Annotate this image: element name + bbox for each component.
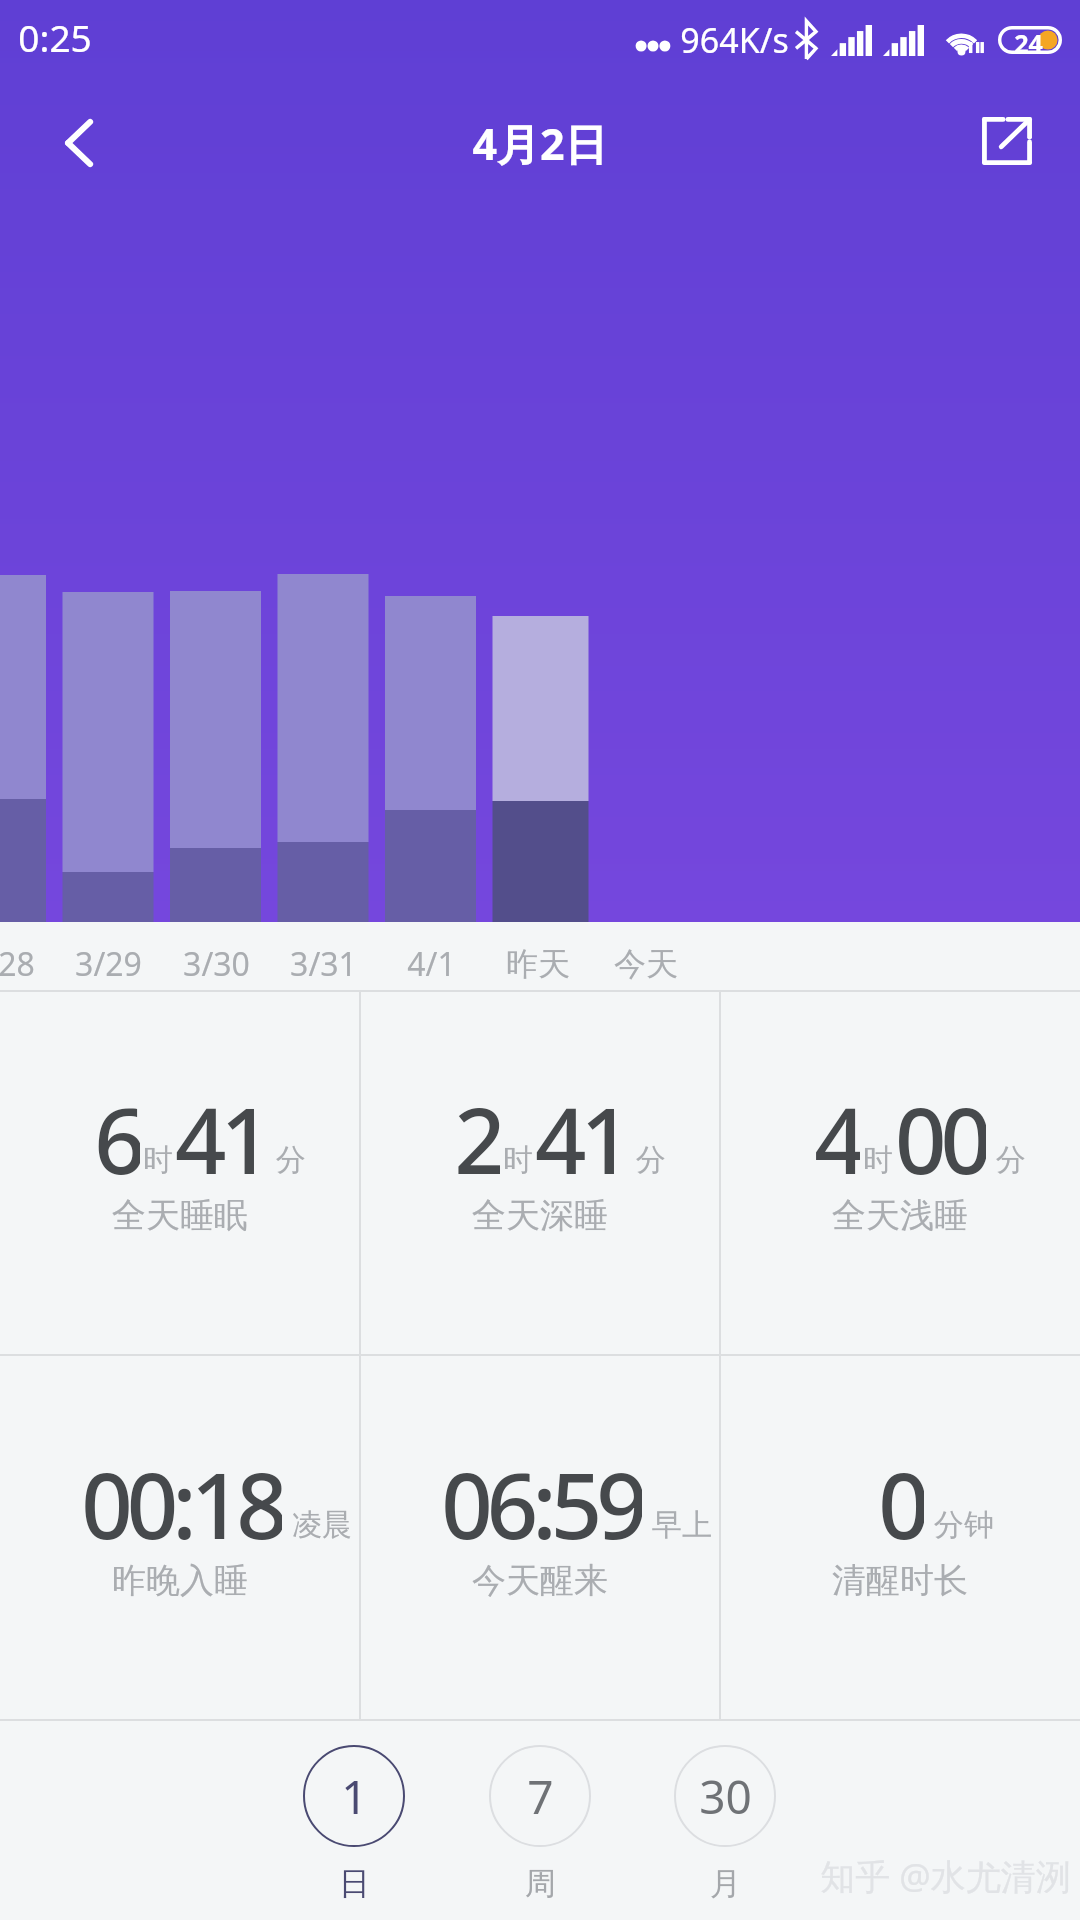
staticText: 00:18 [81, 1443, 282, 1553]
button[interactable]: 4 [720, 990, 1080, 1354]
button[interactable]: 昨天 [485, 930, 591, 998]
staticText: 4月2日 [472, 114, 608, 173]
staticText: 41 [175, 1078, 266, 1188]
staticText: 4/1 [407, 942, 456, 986]
staticText: 3/31 [290, 942, 357, 986]
button[interactable]: Back [34, 97, 126, 189]
staticText: 清醒时长 [832, 1559, 968, 1602]
staticText: 00 [895, 1078, 986, 1188]
staticText: 知乎 @水尤清洌 [820, 1852, 1071, 1900]
button[interactable]: 00:18 [0, 1354, 360, 1719]
button[interactable]: 7 [465, 1726, 615, 1911]
staticText: 1 [341, 1765, 368, 1828]
staticText: 时 [143, 1141, 173, 1179]
staticText: 今天 [614, 944, 678, 984]
button[interactable]: 3/31 [270, 930, 376, 998]
staticText: 4 [814, 1078, 860, 1188]
button[interactable]: 1 [279, 1726, 429, 1911]
staticText: 早上 [652, 1506, 712, 1544]
button[interactable]: 3/29 [55, 930, 161, 998]
staticText: 0:25 [18, 12, 92, 62]
staticText: 分 [636, 1141, 666, 1179]
staticText: 2 [454, 1078, 500, 1188]
staticText: 全天浅睡 [832, 1194, 968, 1237]
staticText: 分 [996, 1141, 1026, 1179]
staticText: 30 [699, 1765, 752, 1828]
button[interactable]: 6 [0, 990, 360, 1354]
button[interactable]: 3/30 [163, 930, 269, 998]
button[interactable]: Share [961, 95, 1053, 187]
staticText: 时 [863, 1141, 893, 1179]
staticText: 全天睡眠 [112, 1194, 248, 1237]
button[interactable]: 4/1 [378, 930, 484, 998]
staticText: 今天醒来 [472, 1559, 608, 1602]
staticText: 分 [276, 1141, 306, 1179]
staticText: 24 [1014, 26, 1043, 54]
button[interactable]: 2 [360, 990, 720, 1354]
button[interactable]: 3/28 [0, 930, 54, 998]
staticText: 分钟 [934, 1506, 994, 1544]
staticText: 964K/s [680, 17, 789, 63]
staticText: 0 [878, 1443, 924, 1553]
staticText: 周 [525, 1864, 556, 1903]
staticText: 7 [527, 1765, 554, 1828]
staticText: 3/28 [0, 942, 35, 986]
staticText: 昨天 [506, 944, 570, 984]
staticText: 时 [503, 1141, 533, 1179]
button[interactable]: 0 [720, 1354, 1080, 1719]
staticText: 3/29 [75, 942, 142, 986]
button[interactable]: 30 [650, 1726, 800, 1911]
staticText: 全天深睡 [472, 1194, 608, 1237]
staticText: 昨晚入睡 [112, 1559, 248, 1602]
staticText: 凌晨 [292, 1506, 352, 1544]
staticText: 日 [339, 1864, 370, 1903]
button[interactable]: 今天 [593, 930, 699, 998]
staticText: 41 [535, 1078, 626, 1188]
staticText: 月 [710, 1864, 741, 1903]
staticText: 6 [94, 1078, 140, 1188]
staticText: 3/30 [183, 942, 250, 986]
button[interactable]: 06:59 [360, 1354, 720, 1719]
staticText: 06:59 [441, 1443, 642, 1553]
